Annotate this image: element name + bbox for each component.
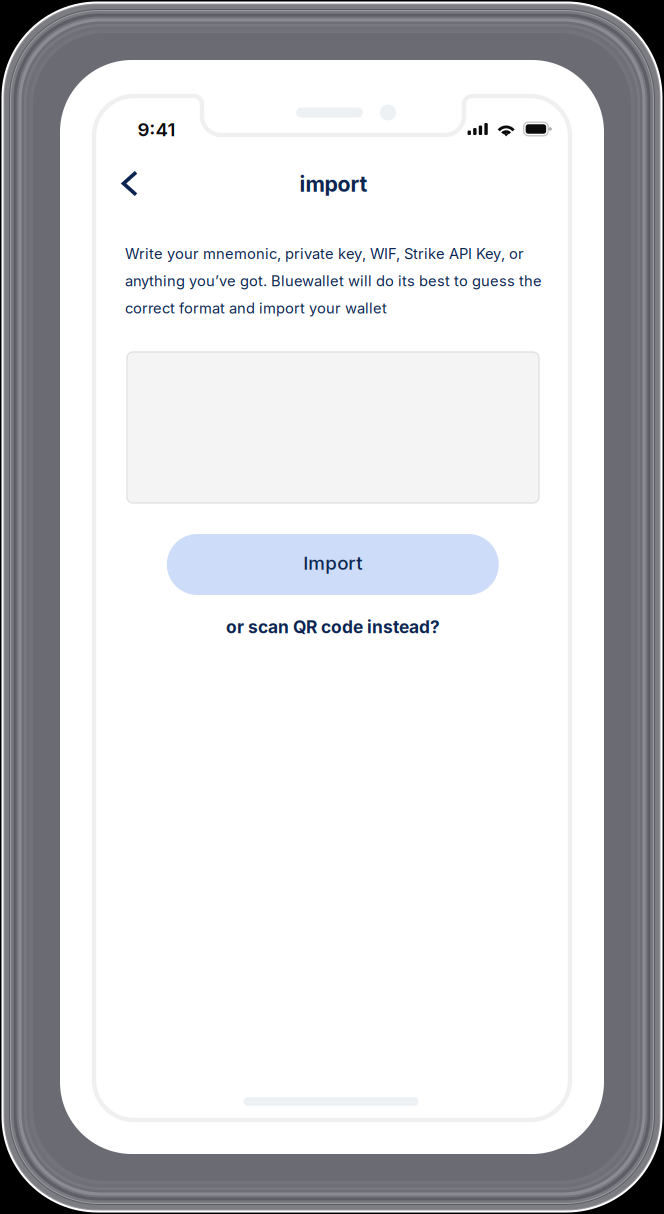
staticText: import <box>299 171 367 197</box>
staticText: Write your mnemonic, private key, WIF, S… <box>125 245 542 317</box>
button[interactable]: or scan QR code instead? <box>203 610 463 644</box>
staticText: Import <box>303 552 362 574</box>
button[interactable]: Back <box>105 159 153 207</box>
button[interactable]: Import <box>167 534 499 595</box>
staticText: or scan QR code instead? <box>226 616 440 637</box>
staticText: 9:41 <box>137 118 175 141</box>
